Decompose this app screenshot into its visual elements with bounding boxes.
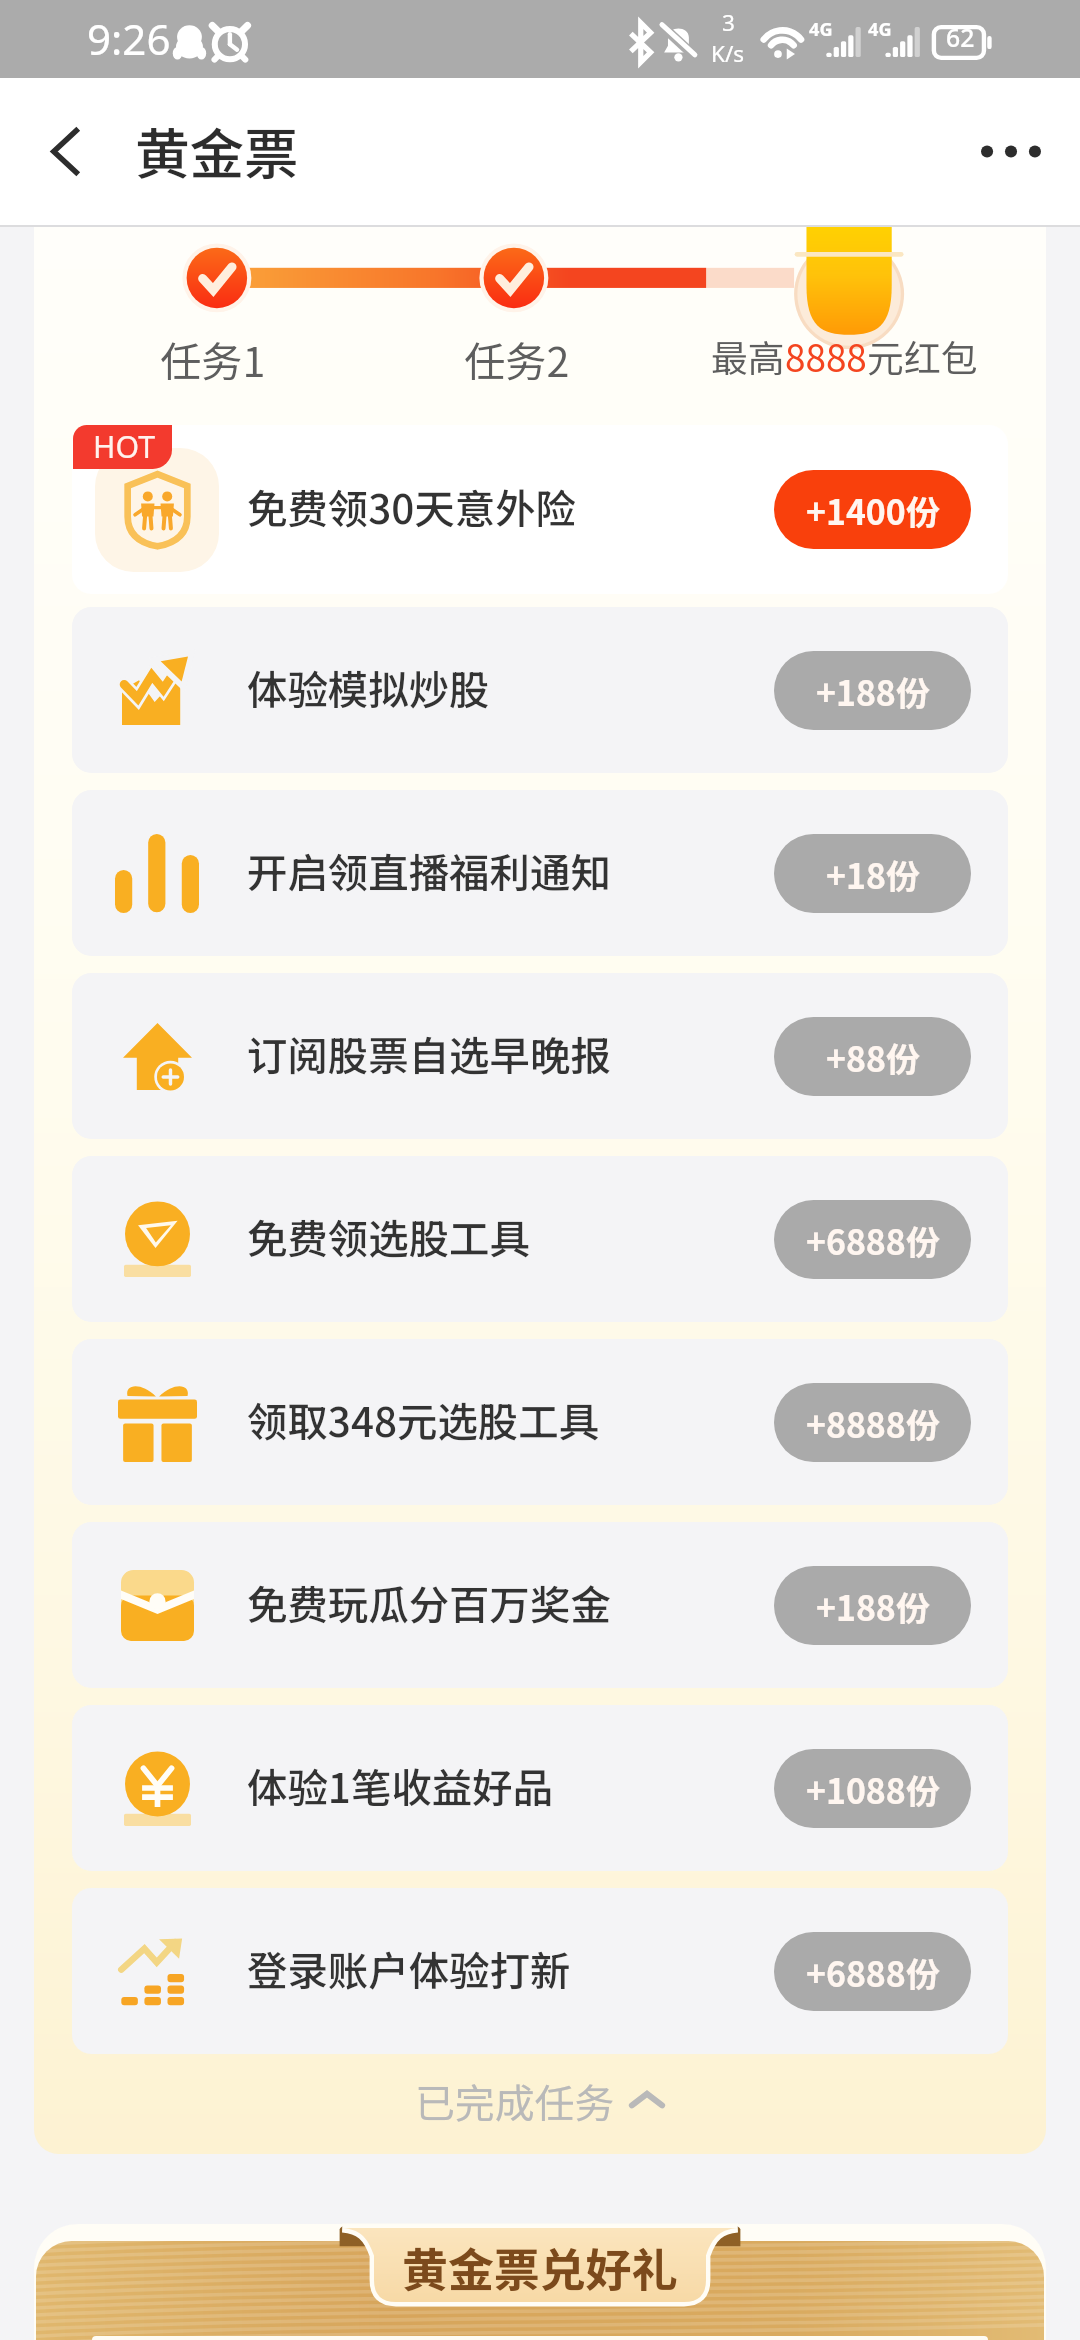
staticText: HOT bbox=[93, 426, 155, 467]
button[interactable]: 登录账户体验打新 bbox=[72, 1888, 1008, 2054]
staticText: 4G bbox=[868, 17, 892, 42]
staticText: 已完成任务 bbox=[415, 2072, 615, 2130]
button[interactable]: +18份 bbox=[774, 834, 971, 913]
staticText: +188份 bbox=[816, 667, 930, 716]
staticText: 9:26 bbox=[87, 10, 171, 67]
staticText: 62 bbox=[946, 21, 975, 55]
staticText: 8888 bbox=[785, 329, 867, 382]
button[interactable]: More options bbox=[958, 88, 1063, 215]
button[interactable]: Back bbox=[11, 88, 121, 215]
button[interactable]: 订阅股票自选早晚报 bbox=[72, 973, 1008, 1139]
button[interactable]: +188份 bbox=[774, 651, 971, 730]
button[interactable]: +1400份 bbox=[774, 470, 971, 549]
staticText: 登录账户体验打新 bbox=[247, 1939, 571, 1998]
button[interactable]: 免费领30天意外险 bbox=[72, 425, 1008, 594]
button[interactable]: 开启领直播福利通知 bbox=[72, 790, 1008, 956]
staticText: +1088份 bbox=[806, 1765, 940, 1814]
staticText: 元红包 bbox=[867, 329, 978, 382]
staticText: 体验1笔收益好品 bbox=[247, 1756, 553, 1815]
button[interactable]: +6888份 bbox=[774, 1932, 971, 2011]
button[interactable]: +88份 bbox=[774, 1017, 971, 1096]
staticText: 开启领直播福利通知 bbox=[247, 841, 611, 900]
staticText: 4G bbox=[809, 17, 833, 42]
button[interactable]: 领取348元选股工具 bbox=[72, 1339, 1008, 1505]
staticText: 免费领选股工具 bbox=[247, 1207, 530, 1266]
staticText: +8888份 bbox=[806, 1399, 940, 1448]
button[interactable]: HOT bbox=[73, 425, 172, 469]
staticText: +188份 bbox=[816, 1582, 930, 1631]
staticText: 最高 bbox=[711, 329, 785, 382]
button[interactable]: 黄金票兑好礼 bbox=[341, 2228, 739, 2302]
staticText: 免费领30天意外险 bbox=[247, 477, 577, 536]
button[interactable]: +188份 bbox=[774, 1566, 971, 1645]
staticText: +88份 bbox=[826, 1033, 920, 1082]
button[interactable]: 免费领选股工具 bbox=[72, 1156, 1008, 1322]
staticText: +6888份 bbox=[806, 1948, 940, 1997]
staticText: +6888份 bbox=[806, 1216, 940, 1265]
staticText: 体验模拟炒股 bbox=[247, 658, 490, 717]
button[interactable]: +6888份 bbox=[774, 1200, 971, 1279]
staticText: 订阅股票自选早晚报 bbox=[247, 1024, 611, 1083]
staticText: 领取348元选股工具 bbox=[247, 1390, 600, 1449]
button[interactable]: 体验1笔收益好品 bbox=[72, 1705, 1008, 1871]
staticText: 黄金票兑好礼 bbox=[402, 2234, 678, 2300]
staticText: +18份 bbox=[826, 850, 920, 899]
staticText: 3 bbox=[722, 7, 735, 38]
button[interactable]: +1088份 bbox=[774, 1749, 971, 1828]
button[interactable]: 免费玩瓜分百万奖金 bbox=[72, 1522, 1008, 1688]
staticText: K/s bbox=[711, 38, 745, 69]
button[interactable]: 体验模拟炒股 bbox=[72, 607, 1008, 773]
staticText: 黄金票 bbox=[135, 111, 299, 190]
staticText: +1400份 bbox=[806, 486, 940, 535]
staticText: 任务2 bbox=[464, 329, 570, 389]
button[interactable]: +8888份 bbox=[774, 1383, 971, 1462]
staticText: 任务1 bbox=[160, 329, 266, 389]
button[interactable]: 已完成任务 bbox=[34, 2054, 1046, 2148]
staticText: 免费玩瓜分百万奖金 bbox=[247, 1573, 611, 1632]
